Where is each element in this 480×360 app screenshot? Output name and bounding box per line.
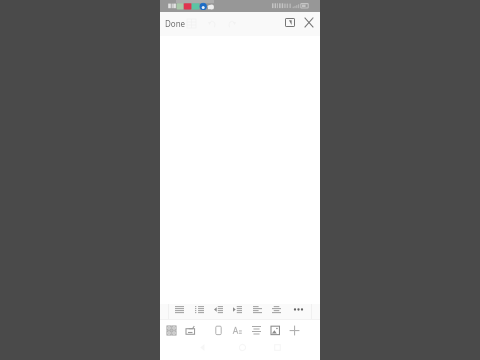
button[interactable]: More options (290, 302, 306, 318)
button[interactable]: Done (162, 16, 188, 30)
button[interactable]: Page view (285, 18, 299, 30)
button[interactable]: Insert (286, 323, 302, 339)
button[interactable]: Increase indent (229, 302, 245, 318)
staticText: Done (165, 18, 186, 29)
button[interactable]: Table (163, 323, 179, 339)
button[interactable]: Align left (249, 302, 265, 318)
button[interactable]: Decrease indent (210, 302, 226, 318)
button[interactable]: Paragraph (248, 323, 264, 339)
button[interactable]: Bulleted list (191, 302, 207, 318)
button[interactable]: Justify (171, 302, 187, 318)
button[interactable]: Close (303, 18, 315, 30)
button[interactable]: Shape (210, 323, 226, 339)
button[interactable]: Image (267, 323, 283, 339)
button[interactable]: Camera (182, 323, 198, 339)
button[interactable]: Align center (268, 302, 284, 318)
button[interactable]: Text style (229, 323, 245, 339)
button[interactable]: Insert table (184, 16, 198, 30)
